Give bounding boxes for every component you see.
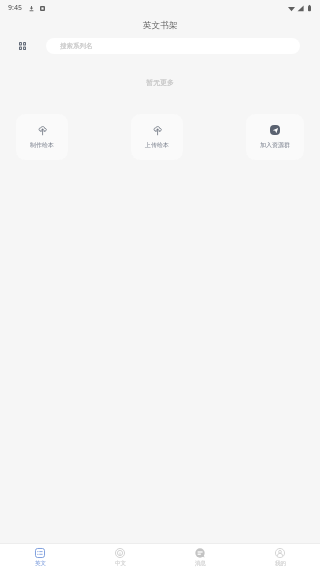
button[interactable]: 制作绘本 <box>16 114 68 160</box>
button[interactable]: Scan QR code <box>13 37 31 55</box>
button[interactable]: 搜索系列名 <box>46 38 300 54</box>
staticText: 我的 <box>275 560 286 567</box>
staticText: 加入资源群 <box>260 141 290 149</box>
staticText: 中文 <box>115 560 126 567</box>
staticText: 上传绘本 <box>145 141 169 149</box>
staticText: 9:45 <box>8 3 22 13</box>
staticText: 搜索系列名 <box>60 42 93 50</box>
button[interactable]: 我的 <box>240 544 320 569</box>
button[interactable]: 英文 <box>0 544 80 569</box>
staticText: 英文 <box>35 560 46 567</box>
button[interactable]: 中文 <box>80 544 160 569</box>
staticText: 制作绘本 <box>30 141 54 149</box>
staticText: 英文书架 <box>143 20 178 31</box>
button[interactable]: 消息 <box>160 544 240 569</box>
staticText: 消息 <box>195 560 206 567</box>
button[interactable]: 上传绘本 <box>131 114 183 160</box>
button[interactable]: 加入资源群 <box>246 114 304 160</box>
staticText: 暂无更多 <box>0 78 320 87</box>
